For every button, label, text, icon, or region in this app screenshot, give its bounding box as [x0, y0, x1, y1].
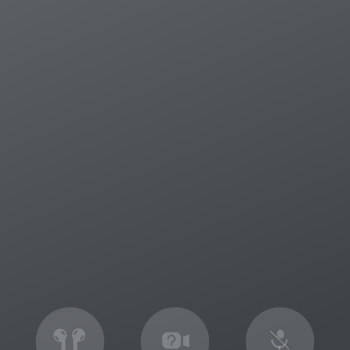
- button[interactable]: Turn on video: [141, 307, 209, 350]
- button[interactable]: Audio output: [36, 307, 104, 350]
- button[interactable]: Unmute: [246, 307, 314, 350]
